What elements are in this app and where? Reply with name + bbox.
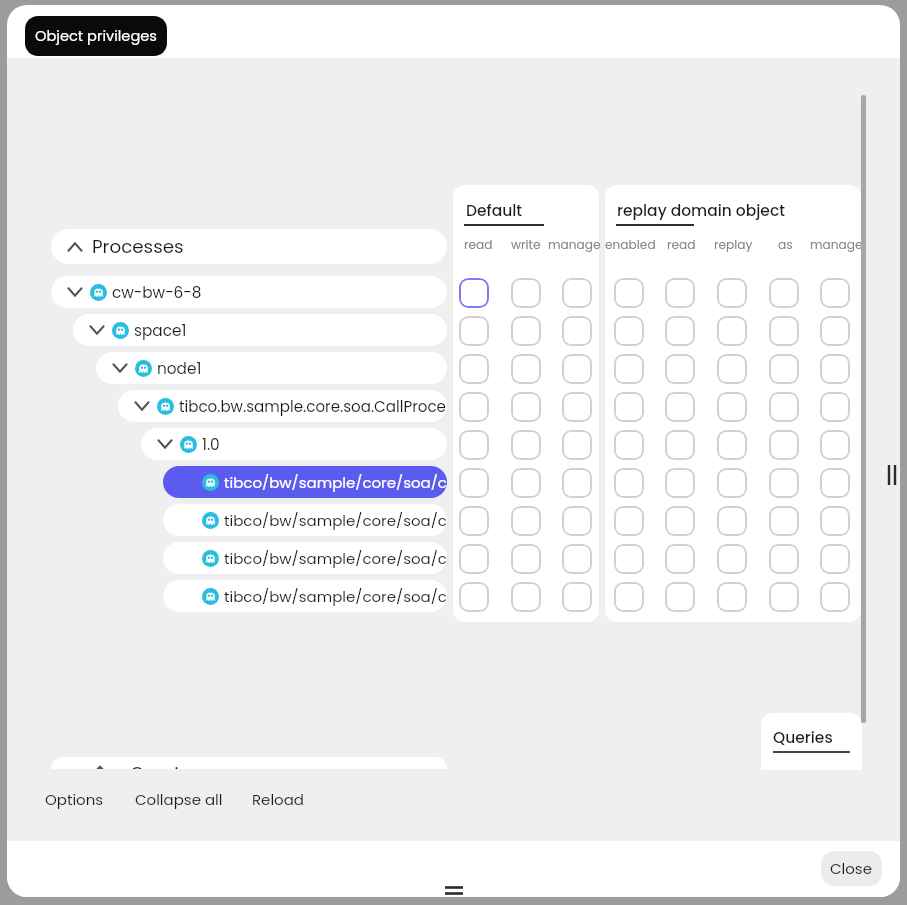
button[interactable]: Toggle privilege xyxy=(820,506,850,536)
button[interactable]: Toggle privilege xyxy=(665,354,695,384)
button[interactable]: tibco/bw/sample/core/soa/co xyxy=(163,504,447,536)
staticText: tibco/bw/sample/core/soa/co xyxy=(224,510,447,531)
button[interactable]: Toggle privilege xyxy=(717,430,747,460)
button[interactable]: Toggle privilege xyxy=(820,392,850,422)
button[interactable]: Toggle privilege xyxy=(562,430,592,460)
button[interactable]: Toggle privilege xyxy=(459,278,489,308)
button[interactable]: tibco/bw/sample/core/soa/co xyxy=(163,580,447,612)
staticText: write xyxy=(511,236,541,253)
button[interactable]: Toggle privilege xyxy=(717,468,747,498)
button[interactable]: Toggle privilege xyxy=(459,544,489,574)
button[interactable]: Toggle privilege xyxy=(459,430,489,460)
button[interactable]: Toggle privilege xyxy=(614,582,644,612)
button[interactable]: 1.0 xyxy=(141,428,447,460)
button[interactable]: Toggle privilege xyxy=(769,468,799,498)
button[interactable]: Toggle privilege xyxy=(614,430,644,460)
button[interactable]: Toggle privilege xyxy=(562,582,592,612)
staticText: enabled xyxy=(605,236,656,253)
button[interactable]: Toggle privilege xyxy=(820,582,850,612)
button[interactable]: Toggle privilege xyxy=(511,278,541,308)
button[interactable]: Object privileges xyxy=(25,16,167,56)
button[interactable]: Toggle privilege xyxy=(614,278,644,308)
staticText: Processes xyxy=(92,234,184,260)
button[interactable]: space1 xyxy=(73,314,447,346)
button[interactable]: Toggle privilege xyxy=(614,354,644,384)
button[interactable]: Toggle privilege xyxy=(665,430,695,460)
button[interactable]: Toggle privilege xyxy=(820,430,850,460)
button[interactable]: Toggle privilege xyxy=(717,506,747,536)
other: Resize height xyxy=(445,886,463,895)
staticText: node1 xyxy=(157,358,202,379)
button[interactable]: Toggle privilege xyxy=(511,582,541,612)
button[interactable]: Toggle privilege xyxy=(614,392,644,422)
button[interactable]: Toggle privilege xyxy=(511,430,541,460)
button[interactable]: Toggle privilege xyxy=(459,316,489,346)
button[interactable]: Toggle privilege xyxy=(665,468,695,498)
button[interactable]: Toggle privilege xyxy=(511,468,541,498)
button[interactable]: Toggle privilege xyxy=(665,544,695,574)
button[interactable]: Toggle privilege xyxy=(459,506,489,536)
button[interactable]: Toggle privilege xyxy=(769,392,799,422)
button[interactable]: Toggle privilege xyxy=(665,316,695,346)
button[interactable]: Toggle privilege xyxy=(717,582,747,612)
button[interactable]: Toggle privilege xyxy=(665,582,695,612)
button[interactable]: Toggle privilege xyxy=(562,354,592,384)
button[interactable]: cw-bw-6-8 xyxy=(51,276,447,308)
button[interactable]: Toggle privilege xyxy=(562,468,592,498)
button[interactable]: Toggle privilege xyxy=(511,354,541,384)
button[interactable]: tibco.bw.sample.core.soa.CallProcess xyxy=(118,390,447,422)
button[interactable]: Toggle privilege xyxy=(459,392,489,422)
button[interactable]: Toggle privilege xyxy=(769,506,799,536)
button[interactable]: Toggle privilege xyxy=(511,392,541,422)
button[interactable]: Toggle privilege xyxy=(459,582,489,612)
staticText: read xyxy=(464,236,493,253)
staticText: manage xyxy=(548,236,601,253)
button[interactable]: Toggle privilege xyxy=(769,582,799,612)
button[interactable]: Toggle privilege xyxy=(769,430,799,460)
button[interactable]: Toggle privilege xyxy=(820,544,850,574)
button[interactable]: Toggle privilege xyxy=(717,316,747,346)
button[interactable]: Toggle privilege xyxy=(820,354,850,384)
button[interactable]: Toggle privilege xyxy=(562,392,592,422)
button[interactable]: Toggle privilege xyxy=(665,278,695,308)
button[interactable]: Close xyxy=(821,851,882,886)
button[interactable]: Toggle privilege xyxy=(665,506,695,536)
staticText: Collapse all xyxy=(135,789,223,810)
button[interactable]: Toggle privilege xyxy=(614,506,644,536)
button[interactable]: Toggle privilege xyxy=(717,354,747,384)
button[interactable]: Options xyxy=(45,789,104,810)
staticText: tibco/bw/sample/core/soa/co xyxy=(224,548,447,569)
button[interactable]: Toggle privilege xyxy=(820,278,850,308)
button[interactable]: Toggle privilege xyxy=(820,316,850,346)
button[interactable]: Toggle privilege xyxy=(769,316,799,346)
button[interactable]: Collapse all xyxy=(135,789,223,810)
button[interactable]: Toggle privilege xyxy=(562,544,592,574)
button[interactable]: Toggle privilege xyxy=(562,506,592,536)
button[interactable]: Toggle privilege xyxy=(562,278,592,308)
button[interactable]: Toggle privilege xyxy=(511,316,541,346)
button[interactable]: Toggle privilege xyxy=(820,468,850,498)
button[interactable]: Toggle privilege xyxy=(511,506,541,536)
button[interactable]: Toggle privilege xyxy=(769,354,799,384)
button[interactable]: Toggle privilege xyxy=(717,392,747,422)
button[interactable]: Toggle privilege xyxy=(769,278,799,308)
button[interactable]: node1 xyxy=(96,352,447,384)
button[interactable]: Toggle privilege xyxy=(459,354,489,384)
button[interactable]: Toggle privilege xyxy=(614,544,644,574)
button[interactable]: tibco/bw/sample/core/soa/co xyxy=(163,542,447,574)
button[interactable]: Toggle privilege xyxy=(665,392,695,422)
staticText: manage xyxy=(810,236,863,253)
button[interactable]: Toggle privilege xyxy=(717,544,747,574)
button[interactable]: Reload xyxy=(252,789,304,810)
button[interactable]: Toggle privilege xyxy=(459,468,489,498)
staticText: replay xyxy=(714,236,753,253)
button[interactable]: Toggle privilege xyxy=(769,544,799,574)
button[interactable]: Toggle privilege xyxy=(511,544,541,574)
button[interactable]: tibco/bw/sample/core/soa/co xyxy=(163,466,447,498)
button[interactable]: Toggle privilege xyxy=(717,278,747,308)
button[interactable]: Toggle privilege xyxy=(562,316,592,346)
button[interactable]: Toggle privilege xyxy=(614,316,644,346)
button[interactable]: Processes xyxy=(51,229,447,264)
button[interactable]: Toggle privilege xyxy=(614,468,644,498)
button[interactable]: Queries xyxy=(51,757,447,769)
